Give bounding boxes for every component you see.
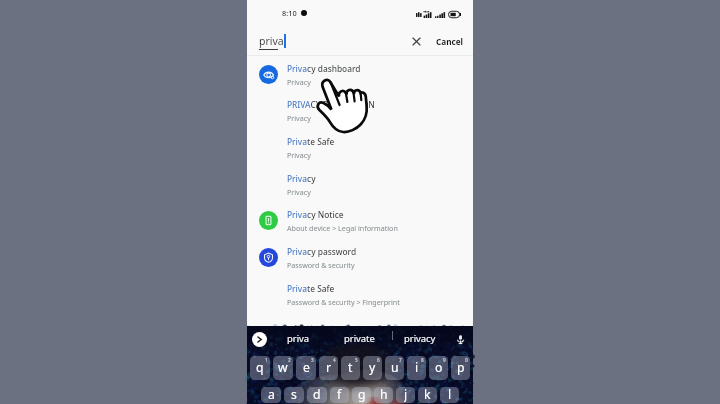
button[interactable]: g	[352, 387, 371, 403]
button[interactable]: p	[451, 356, 470, 380]
staticText: p	[457, 359, 465, 376]
staticText: privacy	[404, 332, 436, 345]
staticText: i	[415, 359, 419, 376]
staticText: Password & security > Fingerprint	[287, 297, 400, 307]
button[interactable]: s	[284, 387, 304, 403]
staticText: 2	[288, 357, 291, 363]
staticText: About device > Legal information	[287, 223, 398, 233]
staticText: y	[369, 359, 376, 376]
staticText: 0	[465, 357, 468, 363]
staticText: Privacy	[287, 77, 311, 87]
staticText: h	[380, 387, 388, 402]
button[interactable]: l	[440, 387, 459, 403]
button[interactable]: k	[418, 387, 437, 403]
staticText: Privacy	[287, 187, 311, 197]
button[interactable]: f	[330, 387, 349, 403]
button[interactable]: PRIVACY PROTECTION	[247, 92, 473, 129]
button[interactable]: Privacy password	[247, 239, 473, 276]
button[interactable]: i	[407, 356, 426, 380]
staticText: Privacy	[287, 150, 311, 160]
button[interactable]: private	[332, 327, 386, 349]
staticText: w	[278, 359, 288, 376]
button[interactable]: Privacy Notice	[247, 202, 473, 239]
staticText: q	[256, 359, 264, 376]
button[interactable]: Privacy	[247, 166, 473, 203]
staticText: k	[424, 387, 431, 402]
staticText: Private Safe	[287, 136, 335, 147]
staticText: 6	[377, 357, 380, 363]
staticText: u	[391, 359, 399, 376]
staticText: Cancel	[436, 36, 464, 47]
staticText: f	[337, 387, 342, 402]
staticText: l	[448, 387, 452, 402]
button[interactable]: t	[341, 356, 360, 380]
button[interactable]: r	[319, 356, 338, 380]
button[interactable]: e	[296, 356, 316, 380]
button[interactable]: d	[307, 387, 327, 403]
staticText: priva	[259, 34, 284, 48]
staticText: e	[303, 359, 310, 376]
button[interactable]: Private Safe	[247, 276, 473, 313]
staticText: Privacy dashboard	[287, 63, 361, 74]
button[interactable]: Voice input	[452, 331, 468, 347]
button[interactable]: h	[374, 387, 393, 403]
staticText: 5	[355, 357, 358, 363]
staticText: t	[348, 359, 353, 376]
button[interactable]: q	[250, 356, 270, 380]
button[interactable]: u	[385, 356, 404, 380]
button[interactable]: w	[273, 356, 293, 380]
button[interactable]: Privacy dashboard	[247, 56, 473, 93]
staticText: o	[435, 359, 443, 376]
staticText: 1	[265, 357, 268, 363]
staticText: Privacy	[287, 113, 311, 123]
staticText: PRIVACY PROTECTION	[287, 99, 375, 110]
button[interactable]: privacy	[393, 327, 447, 349]
button[interactable]: Cancel	[433, 32, 467, 51]
staticText: 8	[421, 357, 424, 363]
staticText: g	[358, 387, 366, 402]
staticText: d	[313, 387, 321, 402]
staticText: Private Safe	[287, 283, 335, 294]
staticText: 8:10	[282, 8, 297, 18]
staticText: 7	[399, 357, 402, 363]
staticText: s	[291, 387, 297, 402]
staticText: 3	[311, 357, 314, 363]
staticText: r	[326, 359, 332, 376]
staticText: private	[344, 332, 375, 345]
button[interactable]: o	[429, 356, 448, 380]
staticText: Privacy Notice	[287, 209, 344, 220]
button[interactable]: j	[396, 387, 415, 403]
button[interactable]: y	[363, 356, 382, 380]
button[interactable]: a	[261, 387, 281, 403]
staticText: Password & security	[287, 260, 355, 270]
button[interactable]: Private Safe	[247, 129, 473, 166]
button[interactable]: Clear search	[406, 31, 426, 51]
staticText: Privacy	[287, 173, 316, 184]
button[interactable]: priva	[271, 327, 325, 349]
button[interactable]: Expand toolbar	[252, 332, 267, 347]
staticText: j	[404, 387, 408, 402]
staticText: Privacy password	[287, 246, 357, 257]
staticText: priva	[287, 332, 310, 345]
staticText: a	[268, 387, 275, 402]
staticText: 4	[333, 357, 336, 363]
staticText: 9	[443, 357, 446, 363]
